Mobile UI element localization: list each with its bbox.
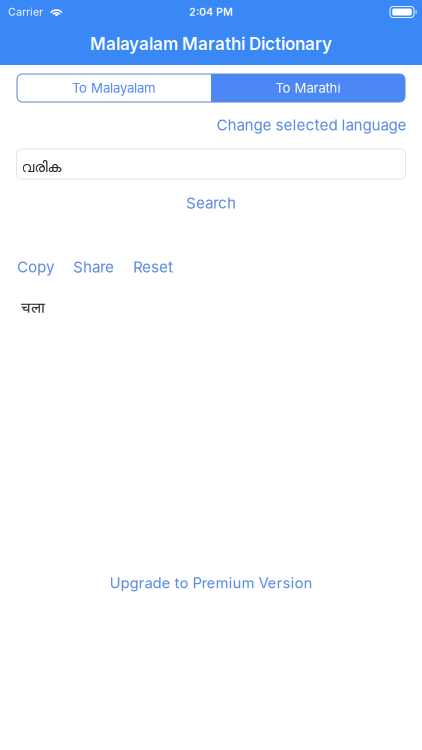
button[interactable]: To Malayalam [17, 74, 211, 102]
staticText: Search [186, 194, 236, 212]
staticText: 2:04 PM [189, 6, 233, 18]
staticText: Reset [133, 258, 173, 276]
button[interactable]: Share [73, 258, 114, 276]
button[interactable]: Upgrade to Premium Version [109, 574, 312, 592]
staticText: To Marathi [275, 80, 340, 96]
staticText: Malayalam Marathi Dictionary [90, 33, 332, 54]
staticText: Change selected language [216, 116, 406, 134]
button[interactable]: Copy [17, 258, 54, 276]
staticText: Share [73, 258, 114, 276]
button[interactable]: വരിക [16, 149, 405, 179]
staticText: To Malayalam [72, 80, 156, 96]
button[interactable]: Search [171, 194, 251, 212]
button[interactable]: Change selected language [216, 116, 406, 134]
staticText: चला [21, 297, 45, 317]
staticText: Carrier [8, 6, 43, 18]
staticText: Upgrade to Premium Version [109, 574, 312, 592]
button[interactable]: To Marathi [211, 74, 405, 102]
staticText: വരിക [21, 160, 61, 175]
staticText: Copy [17, 258, 54, 276]
button[interactable]: Reset [133, 258, 173, 276]
